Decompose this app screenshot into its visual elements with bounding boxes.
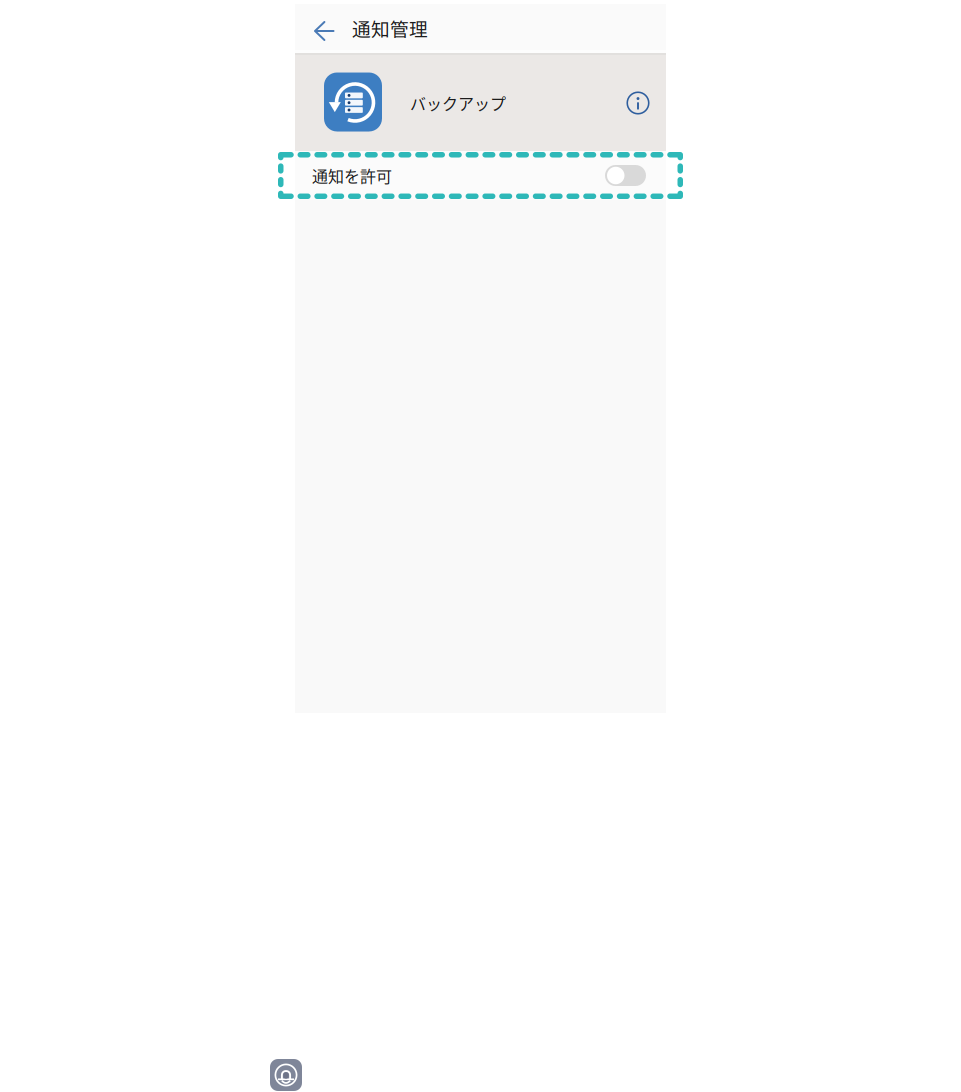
staticText: バックアップ [410,91,506,115]
button[interactable]: 通知を許可 [295,151,666,200]
button[interactable]: Information [619,84,657,122]
staticText: 通知を許可 [312,164,392,187]
staticText: 通知管理 [352,14,428,41]
button[interactable]: Back [304,4,344,50]
